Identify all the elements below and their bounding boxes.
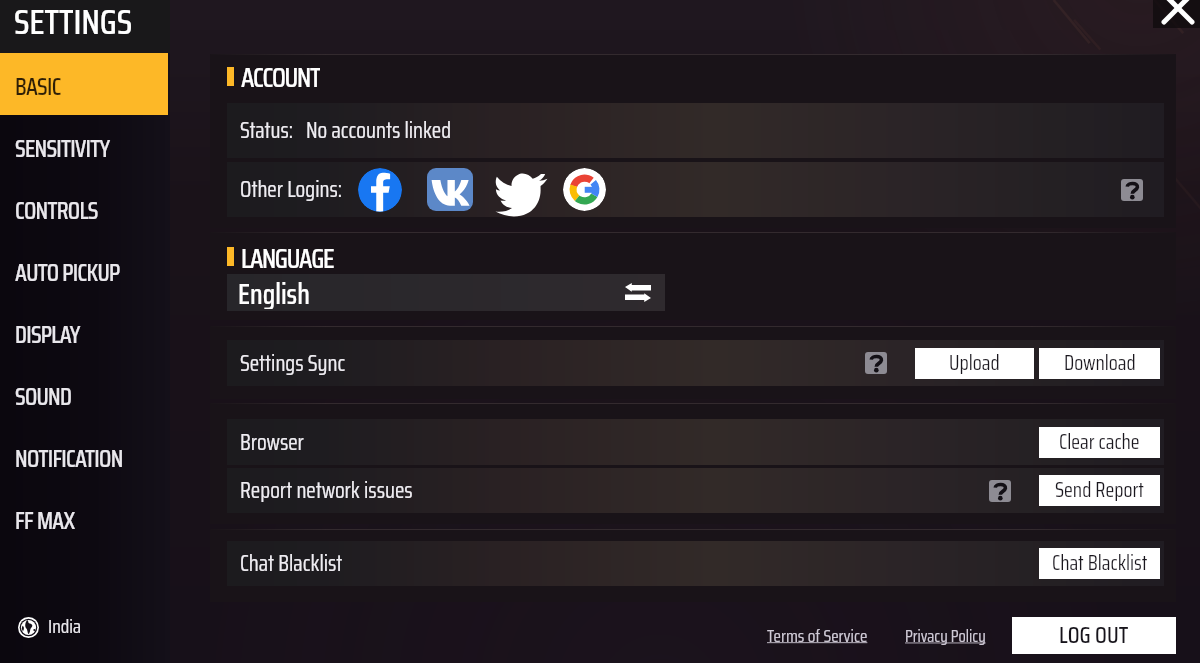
staticText: Chat Blacklist <box>1052 547 1148 578</box>
button[interactable]: Status: <box>227 103 1164 158</box>
button[interactable]: Help <box>865 352 887 374</box>
button[interactable]: CONTROLS <box>0 177 168 239</box>
staticText: FF MAX <box>15 502 75 540</box>
button[interactable]: Settings Sync <box>227 340 1164 386</box>
button[interactable]: Sign in with VK <box>427 168 473 211</box>
button[interactable]: Chat Blacklist <box>1039 548 1160 579</box>
staticText: LANGUAGE <box>241 237 334 273</box>
button[interactable]: Clear cache <box>1039 427 1160 458</box>
staticText: CONTROLS <box>15 192 98 230</box>
button[interactable]: English <box>227 274 665 311</box>
staticText: BASIC <box>15 68 61 106</box>
staticText: Browser <box>240 425 304 460</box>
staticText: NOTIFICATION <box>15 440 123 478</box>
button[interactable]: Chat Blacklist <box>227 541 1164 586</box>
button[interactable]: Send Report <box>1039 475 1160 506</box>
staticText: Report network issues <box>240 473 413 508</box>
button[interactable]: Browser <box>227 419 1164 465</box>
staticText: ACCOUNT <box>241 56 320 94</box>
button[interactable]: DISPLAY <box>0 301 168 363</box>
button[interactable]: SOUND <box>0 363 168 425</box>
button[interactable]: Sign in with Facebook <box>358 168 402 212</box>
staticText: Other Logins: <box>240 172 343 207</box>
button[interactable]: Sign in with Twitter <box>495 170 541 210</box>
staticText: Upload <box>949 347 1000 378</box>
staticText: Download <box>1064 347 1136 378</box>
button[interactable]: Help <box>1121 179 1143 201</box>
button[interactable]: SENSITIVITY <box>0 115 168 177</box>
button[interactable]: LOG OUT <box>1012 617 1176 654</box>
staticText: Status: <box>240 113 294 148</box>
staticText: SOUND <box>15 378 72 416</box>
staticText: Settings Sync <box>240 346 346 381</box>
button[interactable]: NOTIFICATION <box>0 425 168 487</box>
button[interactable]: Upload <box>915 348 1034 379</box>
staticText: No accounts linked <box>306 113 452 148</box>
staticText: AUTO PICKUP <box>15 254 120 292</box>
button[interactable]: Help <box>989 480 1011 502</box>
button[interactable]: Sign in with Google <box>563 168 606 211</box>
staticText: SETTINGS <box>14 0 133 47</box>
staticText: LOG OUT <box>1059 617 1129 651</box>
staticText: English <box>238 272 310 309</box>
staticText: Clear cache <box>1059 426 1140 457</box>
staticText: DISPLAY <box>15 316 80 354</box>
button[interactable]: FF MAX <box>0 487 168 549</box>
button[interactable]: BASIC <box>0 53 168 115</box>
staticText: Chat Blacklist <box>240 546 343 581</box>
staticText: India <box>48 611 82 641</box>
button[interactable]: Privacy Policy <box>905 623 986 649</box>
button[interactable]: AUTO PICKUP <box>0 239 168 301</box>
button[interactable]: Other Logins: <box>227 162 1164 217</box>
button[interactable]: India <box>18 611 82 643</box>
staticText: Send Report <box>1055 474 1144 505</box>
button[interactable]: Download <box>1039 348 1160 379</box>
button[interactable]: Report network issues <box>227 468 1164 513</box>
staticText: SENSITIVITY <box>15 130 110 168</box>
button[interactable]: Close <box>1150 0 1200 36</box>
button[interactable]: Terms of Service <box>767 622 868 649</box>
